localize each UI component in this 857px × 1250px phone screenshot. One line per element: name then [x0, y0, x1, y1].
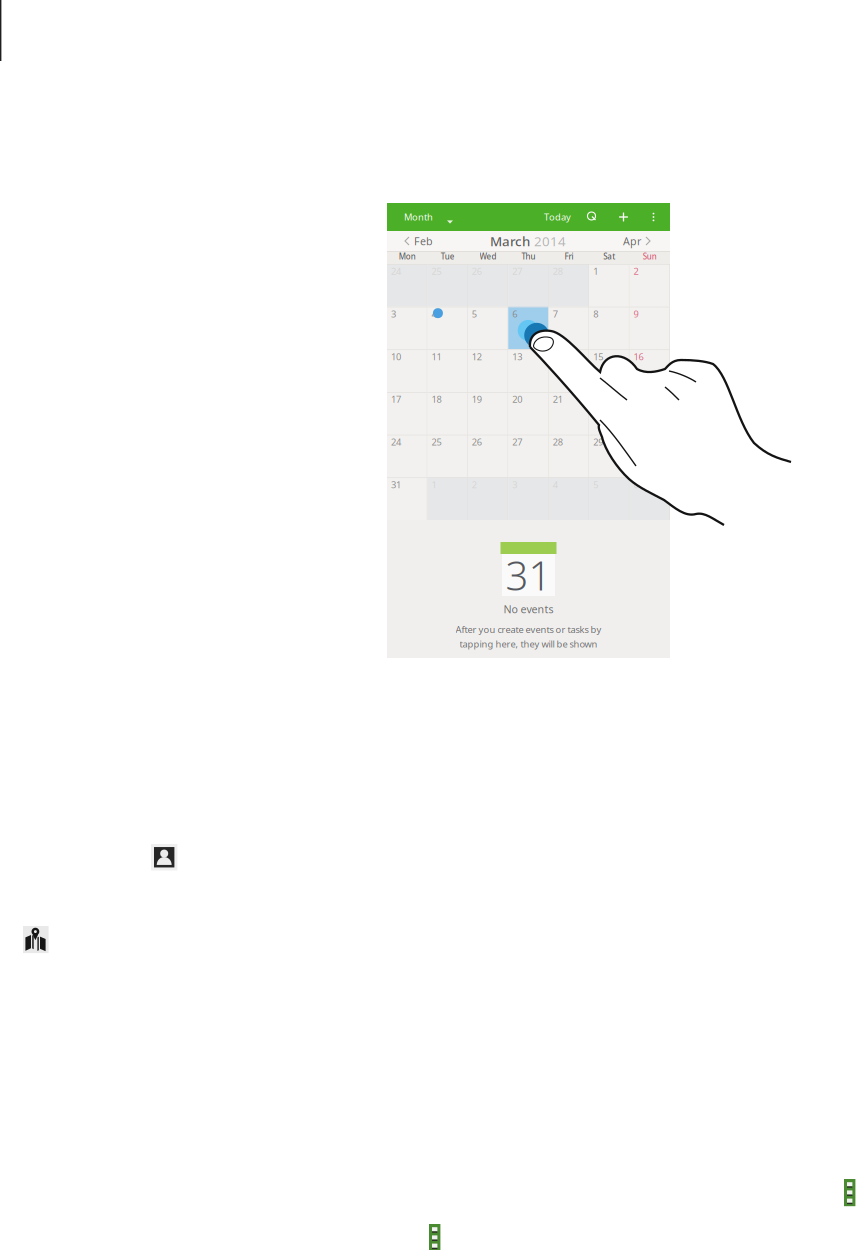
staticText: 4: [431, 308, 436, 320]
staticText: tapping here, they will be shown: [459, 638, 597, 650]
staticText: 25: [431, 265, 441, 277]
button[interactable]: Today: [538, 203, 577, 231]
staticText: 3: [391, 308, 396, 320]
staticText: 29: [593, 436, 603, 448]
button[interactable]: Apr: [615, 231, 670, 251]
staticText: 24: [391, 265, 401, 277]
staticText: 18: [431, 393, 441, 405]
staticText: 2: [634, 265, 639, 277]
staticText: 20: [512, 393, 522, 405]
button[interactable]: Month: [387, 203, 461, 231]
staticText: 28: [553, 265, 563, 277]
button[interactable]: Add event: [608, 203, 639, 231]
staticText: 15: [593, 350, 603, 363]
staticText: 8: [593, 308, 598, 320]
staticText: Thu: [521, 251, 535, 262]
button[interactable]: Feb: [387, 231, 441, 251]
staticText: 1: [431, 478, 436, 491]
button[interactable]: More options: [639, 203, 668, 231]
staticText: Feb: [414, 234, 433, 248]
staticText: Sun: [643, 251, 657, 262]
staticText: 3: [512, 478, 517, 491]
staticText: After you create events or tasks by: [455, 623, 601, 636]
staticText: 2014: [534, 232, 566, 250]
staticText: 6: [512, 308, 517, 320]
staticText: Sat: [603, 251, 615, 262]
staticText: March: [490, 232, 530, 250]
staticText: 10: [391, 350, 401, 363]
staticText: Apr: [623, 234, 641, 248]
button[interactable]: More options: [844, 1179, 855, 1206]
staticText: 5: [472, 308, 477, 320]
button[interactable]: More options: [429, 1224, 440, 1250]
staticText: Tue: [441, 251, 455, 262]
staticText: 31: [391, 478, 401, 491]
staticText: Wed: [480, 251, 497, 262]
staticText: 28: [553, 436, 563, 448]
staticText: 17: [391, 393, 401, 405]
staticText: 21: [553, 393, 563, 405]
staticText: 9: [634, 308, 639, 320]
staticText: Fri: [564, 251, 573, 262]
staticText: 26: [472, 265, 482, 277]
staticText: 13: [512, 350, 522, 363]
staticText: 31: [505, 548, 551, 601]
staticText: 27: [512, 265, 522, 277]
staticText: 1: [593, 265, 598, 277]
staticText: 19: [472, 393, 482, 405]
staticText: Today: [544, 211, 571, 223]
staticText: 25: [431, 436, 441, 448]
staticText: 26: [472, 436, 482, 448]
staticText: 6: [634, 478, 639, 491]
staticText: No events: [503, 602, 553, 616]
button[interactable]: Search: [577, 203, 608, 231]
staticText: 27: [512, 436, 522, 448]
staticText: 2: [472, 478, 477, 491]
staticText: 7: [553, 308, 558, 320]
staticText: 11: [431, 350, 441, 363]
staticText: 12: [472, 350, 482, 363]
staticText: 4: [553, 478, 558, 491]
staticText: 24: [391, 436, 401, 448]
staticText: Month: [404, 211, 433, 223]
staticText: 16: [634, 350, 644, 363]
staticText: Mon: [399, 251, 416, 262]
staticText: 5: [593, 478, 598, 491]
